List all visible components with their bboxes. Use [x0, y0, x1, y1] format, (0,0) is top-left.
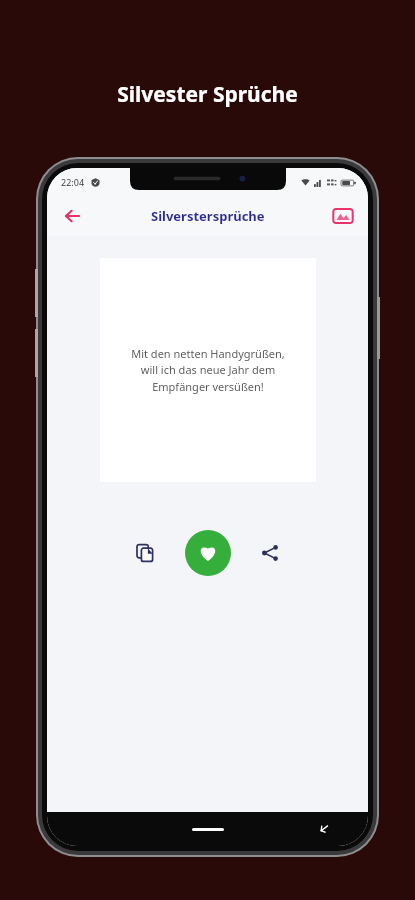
button[interactable]: Share [252, 535, 288, 571]
button[interactable]: Home [192, 828, 224, 831]
button[interactable]: Favorite [185, 530, 231, 576]
button[interactable]: Back [55, 199, 89, 233]
staticText: Silverstersprüche [151, 207, 265, 225]
button[interactable]: Mit den netten Handygrüßen, will ich das… [100, 258, 316, 482]
staticText: Silvester Sprüche [0, 80, 415, 109]
button[interactable]: Back [314, 819, 334, 839]
staticText: Mit den netten Handygrüßen, will ich das… [131, 346, 285, 395]
button[interactable]: Image [328, 201, 358, 231]
button[interactable]: Copy [127, 535, 163, 571]
staticText: 22:04 [61, 176, 85, 188]
